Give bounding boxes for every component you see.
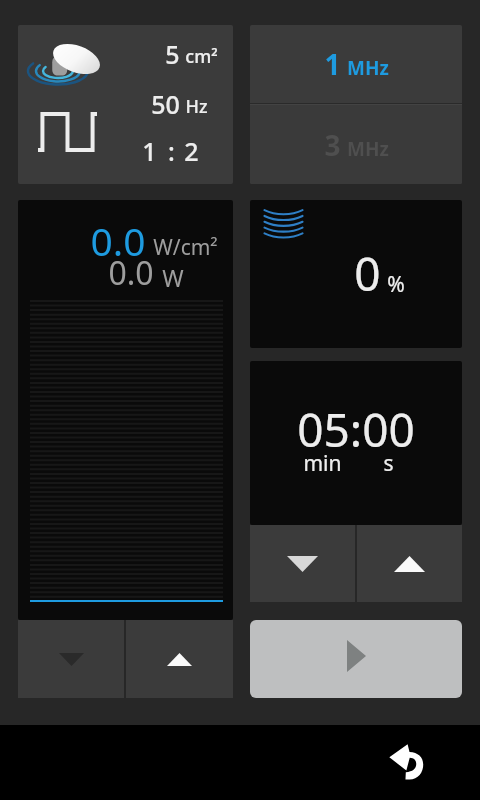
staticText: 2 bbox=[184, 134, 199, 168]
staticText: s bbox=[383, 449, 394, 478]
button[interactable]: Increase time bbox=[357, 525, 462, 602]
staticText: W/cm² bbox=[153, 233, 218, 262]
staticText: 3 bbox=[324, 126, 341, 164]
button[interactable]: Back bbox=[385, 737, 433, 785]
staticText: % bbox=[387, 270, 405, 299]
staticText: 0 bbox=[354, 242, 381, 305]
button[interactable]: 3 bbox=[250, 105, 462, 184]
staticText: 1 bbox=[142, 134, 157, 168]
staticText: : bbox=[168, 134, 175, 168]
staticText: 05:00 bbox=[297, 398, 415, 461]
button[interactable]: Increase intensity bbox=[126, 620, 233, 698]
staticText: cm² bbox=[185, 44, 218, 69]
staticText: Hz bbox=[185, 94, 208, 119]
staticText: 50 bbox=[151, 87, 180, 121]
button[interactable]: Decrease time bbox=[250, 525, 355, 602]
staticText: MHz bbox=[347, 55, 389, 81]
staticText: MHz bbox=[347, 136, 389, 162]
button[interactable]: Treatment time bbox=[250, 361, 462, 525]
button[interactable]: Intensity bbox=[18, 200, 233, 620]
button[interactable]: Start treatment bbox=[250, 620, 462, 698]
button[interactable]: Duty cycle bbox=[250, 200, 462, 348]
staticText: 1 bbox=[324, 45, 341, 83]
staticText: 0.0 bbox=[90, 214, 146, 267]
button[interactable]: 1 bbox=[250, 25, 462, 103]
staticText: 0.0 bbox=[108, 251, 154, 295]
staticText: W bbox=[162, 262, 184, 293]
button[interactable]: Applicator settings bbox=[18, 25, 233, 184]
staticText: 5 bbox=[165, 37, 180, 71]
staticText: min bbox=[303, 449, 342, 478]
